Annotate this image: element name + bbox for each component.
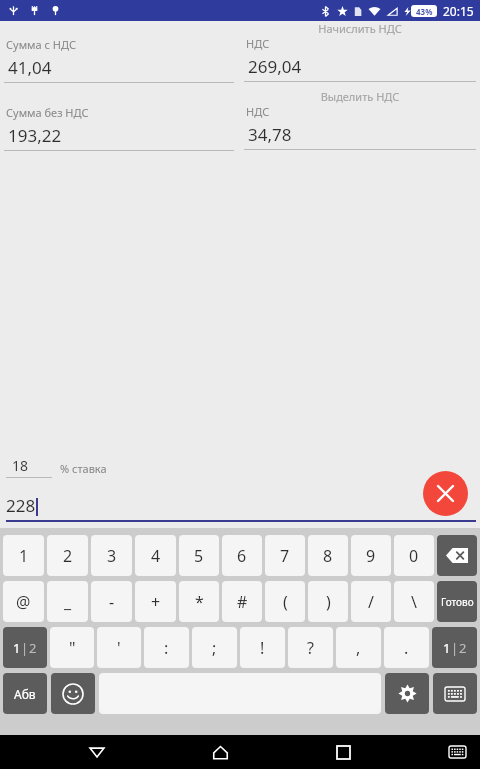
button[interactable]: Готово: [437, 581, 477, 622]
staticText: :: [164, 637, 169, 659]
staticText: ": [69, 637, 76, 659]
button[interactable]: 4: [135, 535, 176, 576]
button[interactable]: 0: [394, 535, 434, 576]
staticText: Начислить НДС: [244, 21, 476, 36]
button[interactable]: (: [265, 581, 305, 622]
button[interactable]: 6: [222, 535, 262, 576]
button[interactable]: +: [135, 581, 176, 622]
button[interactable]: Settings: [385, 673, 429, 714]
staticText: -: [109, 591, 115, 613]
staticText: !: [260, 637, 265, 659]
staticText: Сумма с НДС: [6, 37, 77, 52]
button[interactable]: ;: [192, 627, 237, 668]
button[interactable]: ): [308, 581, 348, 622]
staticText: 1: [443, 639, 451, 657]
button[interactable]: 41,04: [4, 52, 234, 83]
staticText: _: [64, 591, 72, 613]
staticText: Выделить НДС: [244, 89, 476, 104]
button[interactable]: 2: [47, 535, 88, 576]
staticText: 1: [13, 639, 21, 657]
staticText: ): [326, 591, 331, 613]
staticText: 4: [151, 545, 161, 567]
button[interactable]: ": [50, 627, 94, 668]
staticText: 228: [6, 494, 36, 517]
staticText: |: [451, 639, 459, 657]
button[interactable]: Switch layout: [432, 627, 477, 668]
staticText: Готово: [441, 595, 474, 609]
staticText: 193,22: [8, 124, 62, 147]
staticText: #: [237, 591, 248, 613]
staticText: 8: [323, 545, 333, 567]
staticText: .: [404, 637, 409, 659]
button[interactable]: ': [97, 627, 141, 668]
staticText: +: [151, 591, 161, 613]
button[interactable]: Recents: [326, 735, 360, 769]
staticText: 3: [107, 545, 117, 567]
button[interactable]: 5: [179, 535, 219, 576]
button[interactable]: 228: [6, 494, 476, 522]
staticText: /: [368, 591, 374, 613]
button[interactable]: Emoji: [51, 673, 95, 714]
staticText: НДС: [246, 36, 270, 51]
button[interactable]: 269,04: [244, 51, 476, 82]
staticText: 6: [237, 545, 247, 567]
button[interactable]: ?: [288, 627, 333, 668]
button[interactable]: 193,22: [4, 120, 234, 151]
staticText: 41,04: [8, 56, 52, 79]
button[interactable]: _: [47, 581, 88, 622]
staticText: Сумма без НДС: [6, 105, 89, 120]
button[interactable]: 34,78: [244, 119, 476, 150]
button[interactable]: Home: [203, 735, 237, 769]
button[interactable]: /: [351, 581, 391, 622]
button[interactable]: .: [384, 627, 429, 668]
button[interactable]: @: [3, 581, 44, 622]
button[interactable]: #: [222, 581, 262, 622]
button[interactable]: 9: [351, 535, 391, 576]
staticText: НДС: [246, 104, 270, 119]
staticText: ;: [212, 637, 217, 659]
staticText: 18: [12, 456, 52, 475]
button[interactable]: Back: [80, 735, 114, 769]
button[interactable]: Cyrillic layout: [3, 673, 47, 714]
button[interactable]: !: [240, 627, 285, 668]
staticText: 5: [194, 545, 204, 567]
button[interactable]: :: [144, 627, 189, 668]
button[interactable]: \: [394, 581, 434, 622]
staticText: 2: [63, 545, 73, 567]
staticText: \: [411, 591, 417, 613]
staticText: 2: [459, 639, 467, 657]
staticText: ?: [307, 637, 314, 659]
button[interactable]: 7: [265, 535, 305, 576]
staticText: @: [16, 591, 31, 613]
staticText: (: [283, 591, 288, 613]
staticText: 20:15: [443, 3, 474, 19]
staticText: 7: [280, 545, 290, 567]
button[interactable]: ,: [336, 627, 381, 668]
staticText: 1: [19, 545, 29, 567]
staticText: 269,04: [248, 55, 302, 78]
button[interactable]: -: [91, 581, 132, 622]
staticText: *: [195, 591, 204, 613]
staticText: 43%: [416, 6, 433, 17]
staticText: 0: [409, 545, 419, 567]
button[interactable]: Switch layout: [3, 627, 47, 668]
staticText: 2: [29, 639, 37, 657]
button[interactable]: 1: [3, 535, 44, 576]
button[interactable]: Keyboard: [433, 673, 477, 714]
staticText: ': [117, 637, 121, 659]
button[interactable]: Keyboard: [440, 735, 474, 769]
button[interactable]: 3: [91, 535, 132, 576]
staticText: |: [21, 639, 29, 657]
staticText: Абв: [14, 686, 36, 702]
button[interactable]: [437, 535, 477, 576]
button[interactable]: Clear: [423, 471, 468, 516]
staticText: % ставка: [60, 461, 107, 476]
staticText: ,: [356, 637, 361, 659]
staticText: 34,78: [248, 123, 292, 146]
button[interactable]: *: [179, 581, 219, 622]
button[interactable]: 8: [308, 535, 348, 576]
staticText: 9: [366, 545, 376, 567]
